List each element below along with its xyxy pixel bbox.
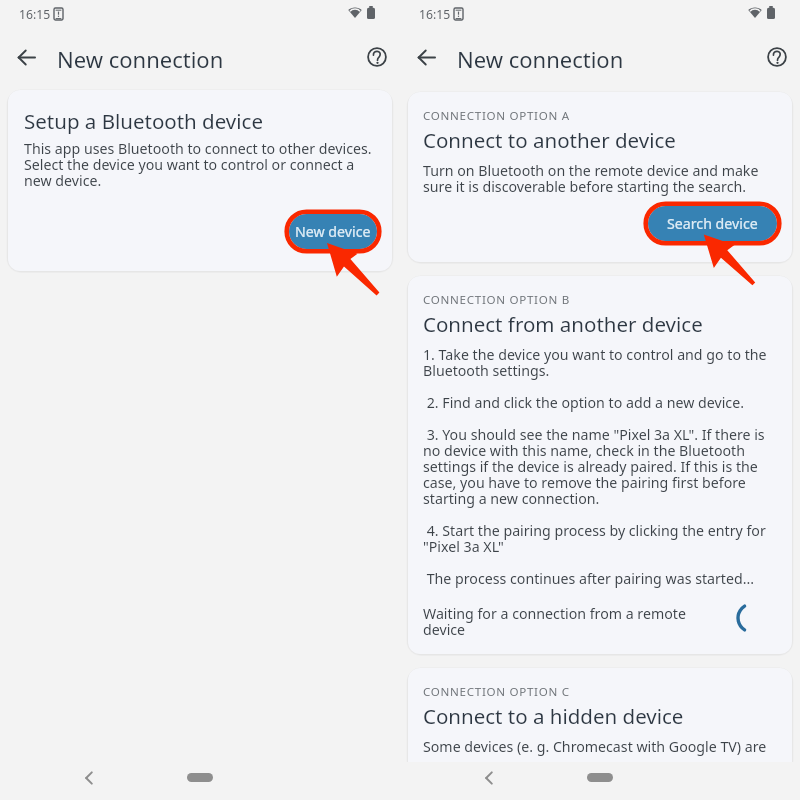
button[interactable]: Back [75, 764, 103, 792]
staticText: New device [295, 222, 371, 241]
button[interactable]: Back [475, 764, 503, 792]
staticText: CONNECTION OPTION A [423, 108, 570, 124]
button[interactable]: Navigate up [8, 39, 44, 75]
staticText: Connect to another device [423, 126, 676, 154]
staticText: Turn on Bluetooth on the remote device a… [423, 161, 777, 196]
button[interactable]: Help [759, 39, 795, 75]
staticText: New connection [457, 44, 624, 74]
staticText: Search device [667, 214, 758, 233]
staticText: 16:15 [19, 6, 51, 23]
button[interactable]: Search device [648, 206, 777, 241]
staticText: Connect to a hidden device [423, 702, 684, 730]
staticText: Some devices (e. g. Chromecast with Goog… [423, 737, 777, 756]
button[interactable]: Home [187, 773, 213, 782]
staticText: This app uses Bluetooth to connect to ot… [24, 139, 377, 190]
staticText: Waiting for a connection from a remote d… [423, 604, 703, 639]
staticText: New connection [57, 44, 224, 74]
staticText: Setup a Bluetooth device [24, 107, 263, 135]
button[interactable]: CONNECTION OPTION C [408, 668, 792, 774]
button[interactable]: Help [359, 39, 395, 75]
button[interactable]: CONNECTION OPTION A [408, 92, 792, 262]
button[interactable]: Home [587, 773, 613, 782]
button[interactable]: New device [289, 214, 377, 249]
staticText: 16:15 [419, 6, 451, 23]
staticText: 1. Take the device you want to control a… [423, 345, 777, 588]
staticText: Connect from another device [423, 310, 703, 338]
button[interactable]: Navigate up [408, 39, 444, 75]
staticText: CONNECTION OPTION B [423, 292, 570, 308]
staticText: CONNECTION OPTION C [423, 684, 570, 700]
button[interactable]: CONNECTION OPTION B [408, 276, 792, 654]
button[interactable]: Setup a Bluetooth device [8, 90, 392, 271]
